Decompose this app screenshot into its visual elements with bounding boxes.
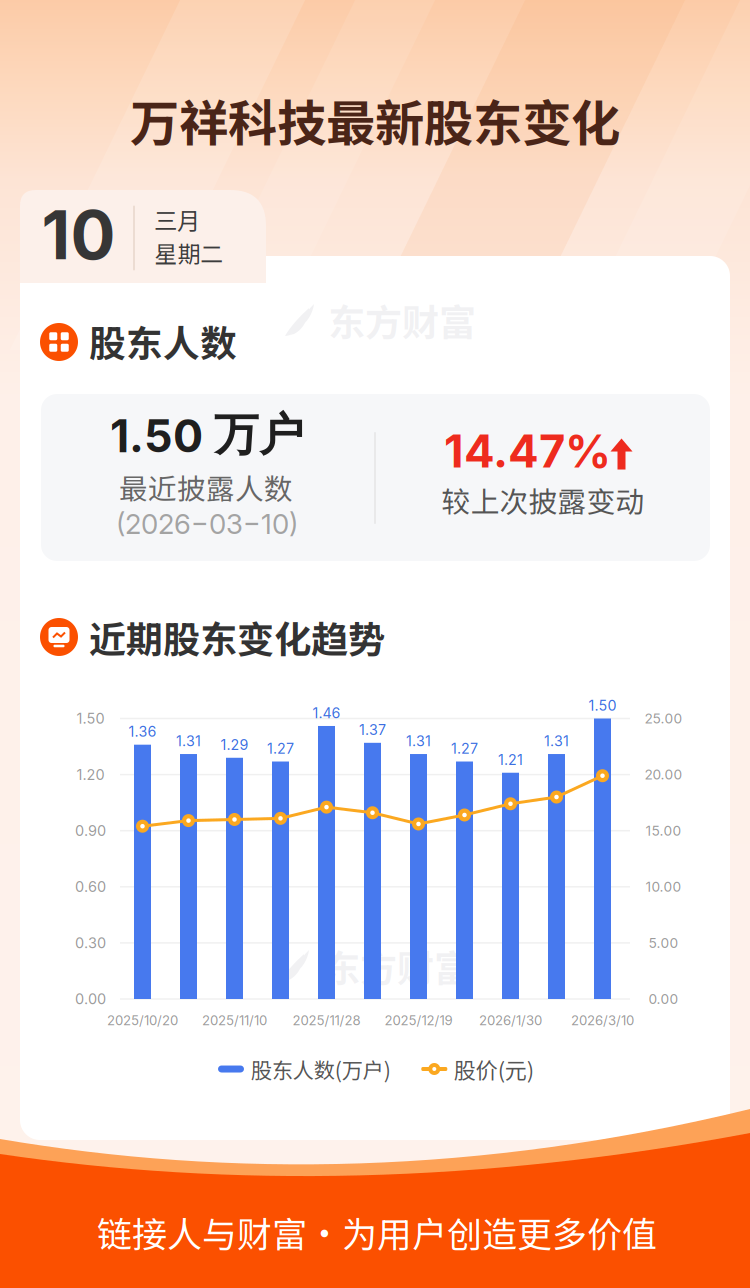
- staticText: 股东人数(万户): [251, 1054, 391, 1084]
- staticText: 1.20: [77, 766, 105, 783]
- staticText: 2026/3/10: [571, 1012, 634, 1028]
- staticText: 0.60: [75, 878, 106, 896]
- staticText: (2026−03−10): [116, 507, 298, 541]
- staticText: 三月: [154, 202, 200, 236]
- staticText: 近期股东变化趋势: [89, 610, 385, 664]
- staticText: 0.00: [75, 990, 106, 1008]
- staticText: 10.00: [646, 878, 682, 895]
- staticText: 1.46: [312, 704, 340, 722]
- staticText: 5.00: [649, 935, 679, 951]
- staticText: 10: [41, 195, 115, 275]
- staticText: 最近披露人数: [119, 466, 293, 508]
- staticText: 1.29: [220, 736, 248, 753]
- staticText: 20.00: [645, 766, 683, 783]
- staticText: 万祥科技最新股东变化: [130, 84, 620, 156]
- staticText: 东方财富: [323, 939, 471, 993]
- staticText: 1.31: [544, 732, 569, 750]
- staticText: 1.50: [588, 697, 616, 714]
- staticText: 0.90: [75, 822, 106, 839]
- staticText: 1.50 万户: [110, 407, 304, 463]
- staticText: 1.37: [359, 721, 386, 738]
- staticText: 14.47%: [444, 424, 611, 478]
- staticText: 2025/11/10: [202, 1012, 267, 1028]
- staticText: 股东人数: [89, 314, 237, 368]
- staticText: 2025/12/19: [384, 1012, 452, 1028]
- staticText: 东方财富: [328, 293, 476, 347]
- staticText: 2025/10/20: [107, 1012, 178, 1028]
- staticText: 15.00: [646, 822, 682, 839]
- staticText: 1.31: [176, 732, 201, 750]
- staticText: 1.36: [128, 723, 156, 740]
- staticText: 2025/11/28: [292, 1012, 360, 1028]
- staticText: 星期二: [154, 236, 223, 269]
- staticText: 0.00: [649, 991, 679, 1007]
- staticText: 25.00: [645, 710, 683, 727]
- staticText: 1.27: [267, 740, 294, 757]
- staticText: 1.21: [498, 751, 523, 768]
- staticText: 股价(元): [454, 1053, 534, 1085]
- staticText: 链接人与财富·为用户创造更多价值: [97, 1207, 657, 1257]
- staticText: 1.27: [451, 740, 478, 757]
- staticText: 较上次披露变动: [441, 479, 644, 521]
- staticText: 0.30: [75, 934, 106, 952]
- staticText: 1.31: [406, 732, 431, 750]
- staticText: 1.50: [77, 710, 105, 727]
- staticText: 2026/1/30: [479, 1012, 542, 1028]
